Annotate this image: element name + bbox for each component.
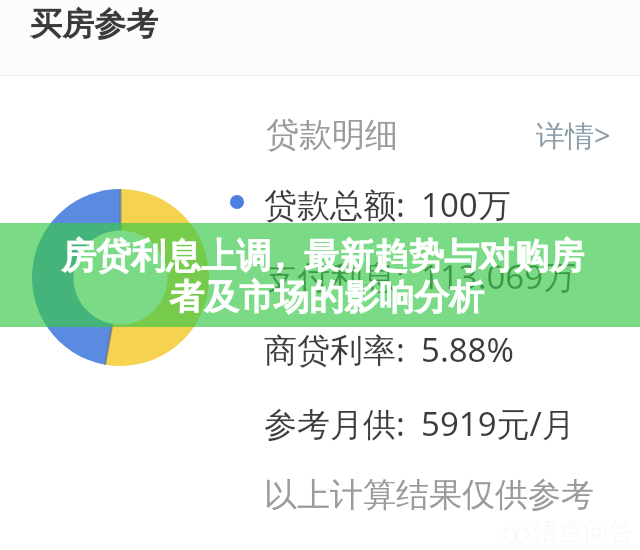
button[interactable]: 房贷利息上调	[0, 223, 640, 327]
staticText: 5.88%	[421, 327, 514, 372]
staticText: 者及市场的影响分析	[169, 275, 484, 319]
button[interactable]: 支付利息:	[264, 254, 577, 299]
button[interactable]: 详情>	[536, 115, 611, 155]
staticText: 房贷利息上调	[61, 234, 271, 278]
staticText: 最新趋势与对购房	[304, 234, 584, 278]
staticText: 贷款总额:	[264, 182, 405, 227]
button[interactable]: 参考月供:	[264, 401, 575, 446]
staticText: 5919元/月	[421, 401, 575, 446]
staticText: 参考月供:	[264, 401, 405, 446]
staticText: 100万	[421, 182, 511, 227]
staticText: 贷款明细	[266, 114, 398, 156]
staticText: 商贷利率:	[264, 327, 405, 372]
button[interactable]: 商贷利率:	[264, 327, 514, 372]
staticText: 以上计算结果仅供参考	[264, 474, 594, 516]
staticText: 支付利息:	[264, 254, 405, 299]
staticText: 买房参考	[30, 4, 158, 44]
button[interactable]: 贷款总额:	[264, 182, 511, 227]
staticText: 113.069万	[421, 254, 577, 299]
staticText: ，	[262, 234, 297, 278]
staticText: 详情>	[536, 115, 611, 155]
